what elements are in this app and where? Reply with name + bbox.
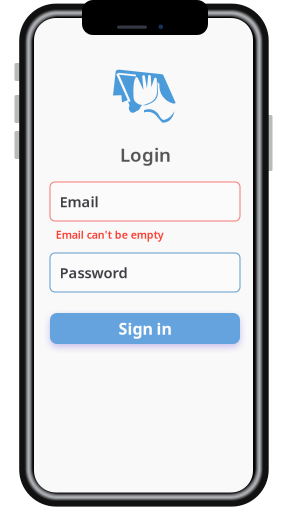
staticText: Login <box>120 142 171 167</box>
staticText: Email can't be empty <box>56 227 164 242</box>
staticText: Email <box>59 192 98 211</box>
staticText: Password <box>59 263 127 282</box>
staticText: Sign in <box>118 318 171 339</box>
button[interactable]: Sign in <box>50 313 240 344</box>
